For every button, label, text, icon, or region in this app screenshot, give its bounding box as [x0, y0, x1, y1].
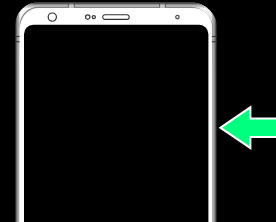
button[interactable]: Swipe in from the right edge: [219, 104, 276, 152]
